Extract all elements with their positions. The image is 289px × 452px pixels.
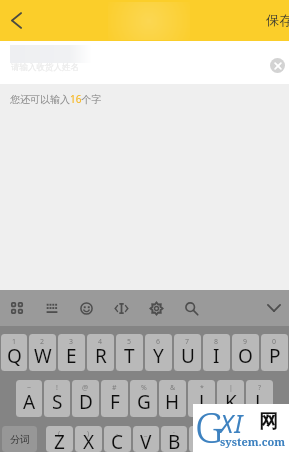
staticText: 2 xyxy=(40,337,45,347)
button[interactable]: Search xyxy=(174,292,209,324)
button[interactable]: 4 xyxy=(87,334,114,371)
staticText: 保存 xyxy=(266,12,289,29)
staticText: F xyxy=(110,389,120,415)
button[interactable]: 9 xyxy=(232,334,259,371)
staticText: G xyxy=(195,398,224,446)
button[interactable]: @ xyxy=(72,380,99,417)
staticText: V xyxy=(140,429,152,452)
staticText: & xyxy=(170,383,176,393)
button[interactable]: ! xyxy=(44,380,70,417)
staticText: * xyxy=(200,383,204,393)
staticText: 您还可以输入16个字 xyxy=(10,92,102,106)
staticText: 5 xyxy=(127,337,132,347)
staticText: 3 xyxy=(69,337,74,347)
staticText: _ xyxy=(144,429,148,439)
staticText: B xyxy=(168,429,181,452)
staticText: system.com xyxy=(220,434,286,449)
staticText: XI xyxy=(220,406,244,440)
staticText: : xyxy=(173,429,175,439)
button[interactable]: 8 xyxy=(203,334,230,371)
button[interactable]: Settings xyxy=(139,292,174,324)
button[interactable]: 0 xyxy=(261,334,288,371)
button[interactable]: Move cursor xyxy=(104,292,139,324)
button[interactable]: 5 xyxy=(116,334,143,371)
button[interactable]: ~ xyxy=(16,380,42,417)
staticText: I xyxy=(213,343,220,369)
button[interactable]: 保存 xyxy=(262,0,289,41)
staticText: H xyxy=(165,389,180,415)
staticText: 网 xyxy=(259,410,278,434)
staticText: D xyxy=(79,389,93,415)
staticText: 请输入收货人姓名 xyxy=(11,62,79,73)
staticText: X xyxy=(83,429,95,452)
button[interactable]: # xyxy=(101,380,128,417)
staticText: ~ xyxy=(27,383,32,393)
button[interactable]: & xyxy=(159,380,186,417)
staticText: N xyxy=(195,429,210,452)
staticText: 分词 xyxy=(10,433,30,446)
staticText: 1 xyxy=(12,337,17,347)
staticText: ! xyxy=(56,383,58,393)
staticText: % xyxy=(141,383,147,393)
button[interactable]: Hide keyboard xyxy=(258,292,289,324)
button[interactable]: : xyxy=(161,426,187,452)
staticText: U xyxy=(181,343,195,369)
button[interactable]: 1 xyxy=(1,334,27,371)
staticText: G xyxy=(137,389,151,415)
staticText: ) xyxy=(87,429,90,439)
staticText: K xyxy=(225,389,237,415)
button[interactable]: / xyxy=(217,426,243,452)
staticText: 8 xyxy=(214,337,219,347)
staticText: 4 xyxy=(98,337,103,347)
staticText: 6 xyxy=(156,337,161,347)
staticText: - xyxy=(116,429,119,439)
staticText: T xyxy=(124,343,135,369)
staticText: ? xyxy=(258,383,262,393)
button[interactable]: 7 xyxy=(174,334,201,371)
staticText: | xyxy=(229,383,233,393)
button[interactable]: Keyboard layouts xyxy=(0,292,34,324)
staticText: A xyxy=(23,389,36,415)
button[interactable]: Emoji xyxy=(69,292,104,324)
button[interactable]: 分词 xyxy=(2,426,37,452)
staticText: Y xyxy=(153,343,164,369)
staticText: 9 xyxy=(243,337,248,347)
staticText: R xyxy=(95,343,107,369)
staticText: # xyxy=(112,383,117,393)
button[interactable]: _ xyxy=(133,426,159,452)
staticText: W xyxy=(34,343,52,369)
staticText: J xyxy=(199,389,205,415)
staticText: O xyxy=(238,343,253,369)
button[interactable]: ; xyxy=(189,426,215,452)
button[interactable]: ) xyxy=(75,426,102,452)
staticText: Q xyxy=(7,343,22,369)
staticText: P xyxy=(269,343,281,369)
staticText: M xyxy=(221,429,239,452)
button[interactable]: ? xyxy=(246,380,273,417)
button[interactable]: % xyxy=(130,380,157,417)
button[interactable]: - xyxy=(104,426,131,452)
staticText: ; xyxy=(201,429,203,439)
button[interactable]: 3 xyxy=(58,334,85,371)
staticText: ( xyxy=(58,429,61,439)
button[interactable]: | xyxy=(217,380,244,417)
button[interactable]: 2 xyxy=(29,334,56,371)
staticText: L xyxy=(255,389,265,415)
staticText: @ xyxy=(82,383,89,393)
staticText: 0 xyxy=(272,337,277,347)
staticText: Z xyxy=(54,429,65,452)
button[interactable]: Keyboard xyxy=(34,292,69,324)
button[interactable]: ( xyxy=(46,426,73,452)
button[interactable]: * xyxy=(188,380,215,417)
staticText: / xyxy=(229,429,232,439)
staticText: S xyxy=(52,389,63,415)
button[interactable]: Clear text xyxy=(270,58,285,73)
button[interactable]: 6 xyxy=(145,334,172,371)
staticText: 7 xyxy=(185,337,190,347)
button[interactable]: Back xyxy=(0,0,33,41)
button[interactable]: Backspace xyxy=(252,426,287,452)
staticText: C xyxy=(111,429,124,452)
staticText: E xyxy=(66,343,77,369)
